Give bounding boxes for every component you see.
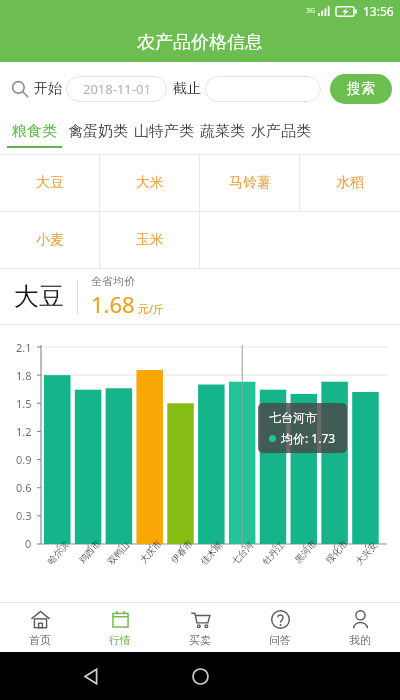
staticText: 13:56 bbox=[363, 3, 394, 19]
staticText: 2.1 bbox=[16, 340, 32, 355]
button[interactable]: Home bbox=[181, 657, 219, 695]
staticText: 0.6 bbox=[16, 480, 32, 495]
button[interactable]: 水产品类 bbox=[251, 122, 311, 148]
button[interactable]: 行情 bbox=[80, 603, 160, 652]
button[interactable]: Back bbox=[72, 657, 110, 695]
staticText: 1.8 bbox=[16, 368, 32, 383]
button[interactable]: 山特产类 bbox=[134, 122, 194, 148]
staticText: 我的 bbox=[349, 633, 371, 647]
staticText: 搜索 bbox=[347, 80, 375, 98]
button[interactable]: 大豆 bbox=[0, 155, 100, 211]
staticText: 0.3 bbox=[16, 508, 32, 523]
staticText: 3G bbox=[306, 6, 316, 16]
staticText: 问答 bbox=[269, 633, 291, 647]
staticText: 哈尔滨市 bbox=[45, 537, 73, 566]
staticText: 七台河市 bbox=[229, 536, 258, 567]
staticText: 1.5 bbox=[16, 396, 32, 411]
button[interactable]: End date bbox=[205, 76, 321, 102]
staticText: 绥化市 bbox=[323, 538, 350, 565]
button[interactable]: 大米 bbox=[100, 155, 200, 211]
button[interactable]: 禽蛋奶类 bbox=[68, 122, 128, 148]
button[interactable]: 我的 bbox=[320, 603, 400, 652]
staticText: 大豆 bbox=[36, 174, 64, 192]
staticText: 0.9 bbox=[16, 452, 32, 467]
button[interactable]: Search bbox=[8, 77, 32, 101]
button[interactable]: 粮食类 bbox=[7, 122, 62, 148]
staticText: 马铃薯 bbox=[229, 174, 271, 192]
staticText: 行情 bbox=[109, 633, 131, 647]
staticText: 禽蛋奶类 bbox=[68, 122, 128, 141]
button[interactable]: 马铃薯 bbox=[200, 155, 300, 211]
staticText: 首页 bbox=[29, 633, 51, 647]
button[interactable]: 水稻 bbox=[300, 155, 400, 211]
staticText: 大米 bbox=[136, 174, 164, 192]
button[interactable]: 玉米 bbox=[100, 212, 200, 268]
staticText: 蔬菜类 bbox=[200, 122, 245, 141]
button[interactable]: 首页 bbox=[0, 603, 80, 652]
staticText: 佳木斯市 bbox=[198, 536, 227, 567]
staticText: 水稻 bbox=[336, 174, 364, 192]
staticText: 伊春市 bbox=[168, 538, 195, 565]
staticText: 2018-11-01 bbox=[83, 80, 151, 98]
staticText: 玉米 bbox=[136, 231, 164, 249]
staticText: 1.2 bbox=[16, 424, 32, 439]
staticText: 1.68 bbox=[91, 289, 135, 319]
staticText: 双鸭山市 bbox=[105, 536, 134, 567]
staticText: 农产品价格信息 bbox=[137, 31, 263, 54]
button[interactable]: 买卖 bbox=[160, 603, 240, 652]
staticText: 鸡西市 bbox=[76, 538, 103, 565]
staticText: 黑河市 bbox=[292, 538, 319, 565]
staticText: 牡丹江市 bbox=[260, 536, 289, 567]
button[interactable]: 搜索 bbox=[330, 74, 392, 104]
staticText: 买卖 bbox=[189, 633, 211, 647]
staticText: 均价: 1.73 bbox=[281, 430, 336, 446]
button[interactable]: 问答 bbox=[240, 603, 320, 652]
staticText: 山特产类 bbox=[134, 122, 194, 141]
button[interactable]: 小麦 bbox=[0, 212, 100, 268]
staticText: 大庆市 bbox=[137, 538, 164, 565]
staticText: 七台河市 bbox=[269, 410, 317, 425]
staticText: 粮食类 bbox=[12, 122, 57, 141]
staticText: 水产品类 bbox=[251, 122, 311, 141]
staticText: 0 bbox=[25, 536, 32, 551]
button[interactable]: 蔬菜类 bbox=[200, 122, 245, 148]
staticText: 开始 bbox=[34, 80, 62, 98]
staticText: 大兴安岭地区 bbox=[353, 536, 382, 567]
staticText: 全省均价 bbox=[91, 274, 135, 288]
button[interactable]: 2018-11-01 bbox=[66, 76, 167, 102]
staticText: 元/斤 bbox=[138, 301, 165, 316]
staticText: 小麦 bbox=[36, 231, 64, 249]
staticText: 大豆 bbox=[14, 281, 64, 312]
staticText: 截止 bbox=[173, 80, 201, 98]
